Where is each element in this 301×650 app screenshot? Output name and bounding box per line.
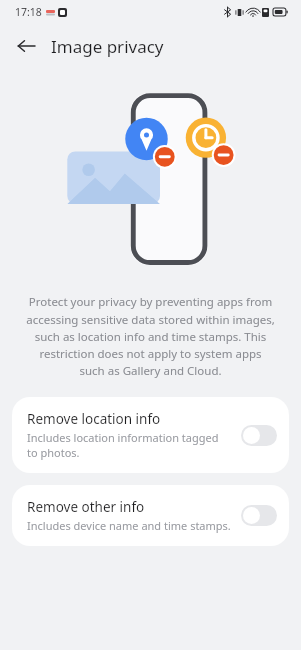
- staticText: 17:18: [15, 5, 42, 19]
- button[interactable]: Remove other info: [12, 485, 289, 546]
- button[interactable]: Remove location info: [12, 397, 289, 473]
- staticText: Remove location info: [27, 410, 161, 428]
- staticText: Remove other info: [27, 498, 145, 516]
- button[interactable]: Toggle: [241, 425, 277, 446]
- staticText: Includes device name and time stamps.: [27, 518, 231, 533]
- staticText: Protect your privacy by preventing apps …: [26, 294, 275, 378]
- button[interactable]: Toggle: [241, 505, 277, 526]
- staticText: Image privacy: [51, 35, 164, 58]
- button[interactable]: Back: [8, 28, 44, 64]
- staticText: Includes location information tagged to …: [27, 430, 231, 460]
